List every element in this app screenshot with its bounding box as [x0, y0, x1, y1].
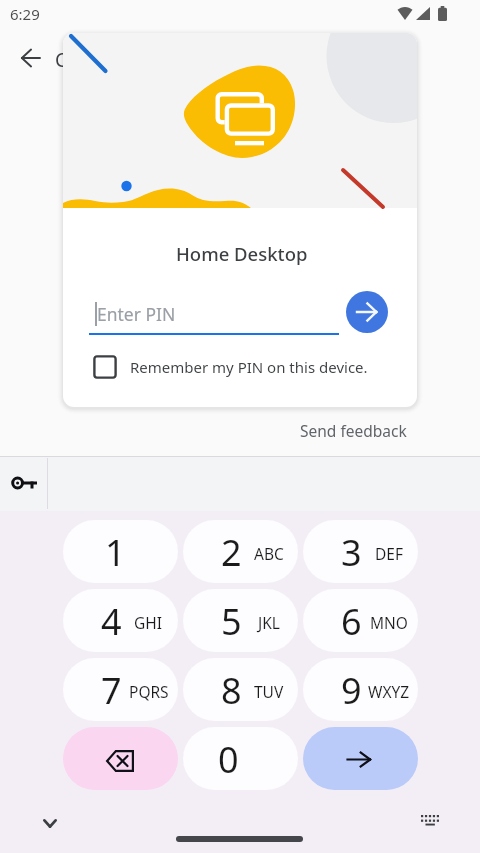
staticText: DEF	[375, 543, 403, 564]
staticText: 8	[221, 666, 242, 715]
staticText: 4	[101, 597, 122, 646]
staticText: Enter PIN	[97, 302, 176, 326]
staticText: 3	[341, 528, 362, 577]
button[interactable]: 5	[183, 589, 298, 652]
button[interactable]: 9	[303, 658, 418, 721]
button[interactable]: Enter	[303, 727, 418, 790]
button[interactable]: 3	[303, 520, 418, 583]
button[interactable]: Send feedback	[300, 420, 407, 441]
button[interactable]: 0	[183, 727, 298, 790]
button[interactable]: Remember my PIN on this device.	[93, 350, 368, 384]
staticText: 7	[101, 666, 122, 715]
staticText: 5	[221, 597, 242, 646]
staticText: GHI	[134, 612, 163, 633]
staticText: PQRS	[129, 681, 169, 702]
button[interactable]: 1	[63, 520, 178, 583]
button[interactable]: Back	[6, 34, 54, 82]
staticText: 9	[341, 666, 362, 715]
button[interactable]: Password manager	[0, 459, 48, 507]
button[interactable]: Switch keyboard	[408, 798, 452, 842]
staticText: JKL	[258, 612, 280, 633]
staticText: TUV	[254, 681, 284, 702]
button[interactable]: 8	[183, 658, 298, 721]
staticText: 6:29	[10, 4, 40, 24]
staticText: WXYZ	[368, 681, 410, 702]
button[interactable]: Backspace	[63, 727, 178, 790]
button[interactable]: Enter PIN	[89, 295, 339, 335]
staticText: MNO	[370, 612, 408, 633]
button[interactable]: Hide keyboard	[28, 801, 72, 845]
staticText: 1	[105, 528, 126, 577]
button[interactable]: 6	[303, 589, 418, 652]
button[interactable]: 4	[63, 589, 178, 652]
button[interactable]: Connect	[346, 291, 388, 333]
button[interactable]: 7	[63, 658, 178, 721]
staticText: Chrome Remote Desktop	[55, 47, 280, 73]
button[interactable]: 2	[183, 520, 298, 583]
staticText: 0	[218, 735, 239, 784]
staticText: Remember my PIN on this device.	[130, 357, 368, 377]
staticText: ABC	[254, 543, 284, 564]
staticText: Home Desktop	[176, 241, 308, 266]
staticText: 2	[221, 528, 242, 577]
staticText: 6	[341, 597, 362, 646]
